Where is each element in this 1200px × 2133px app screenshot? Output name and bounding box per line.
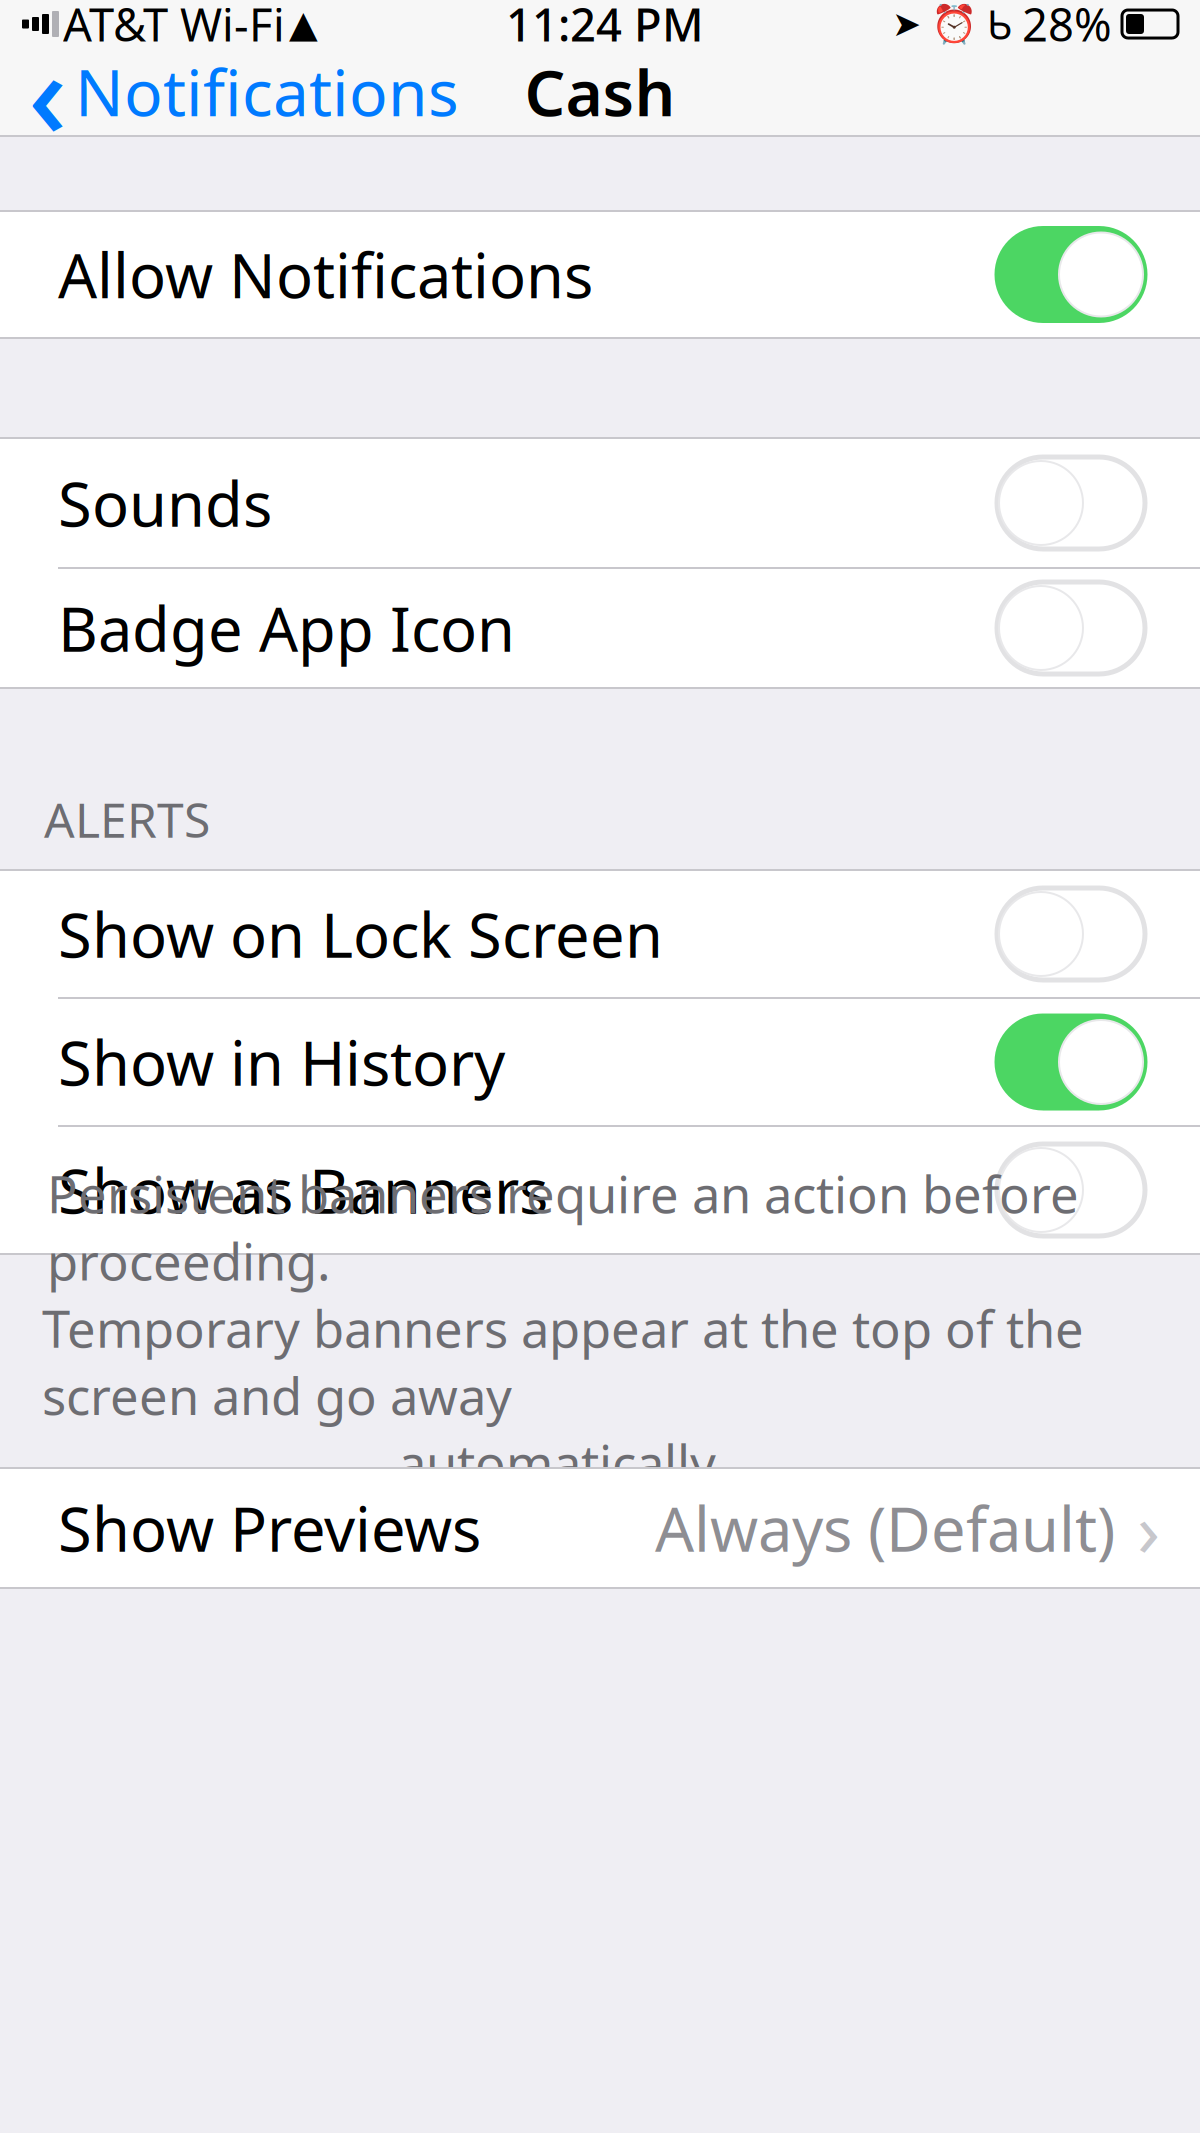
staticText: Persistent banners require an action bef… — [47, 1160, 1079, 1294]
staticText: AT&T Wi-Fi — [63, 0, 285, 54]
staticText: 11:24 PM — [506, 0, 704, 54]
staticText: Show as Banners — [58, 1149, 548, 1231]
button[interactable]: Sounds — [0, 439, 1200, 567]
staticText: Cash — [524, 49, 675, 134]
staticText: Show in History — [58, 1021, 505, 1103]
staticText: ‹ — [28, 12, 67, 171]
staticText: Show on Lock Screen — [58, 893, 663, 975]
button[interactable]: Show Previews — [0, 1469, 1200, 1587]
staticText: ALERTS — [44, 787, 210, 851]
staticText: ➤ — [892, 4, 921, 44]
staticText: ▲ — [289, 3, 318, 45]
staticText: Sounds — [58, 462, 272, 544]
button[interactable]: ‹ — [0, 47, 479, 135]
staticText: ⏰ — [931, 3, 977, 45]
staticText: 28% — [1022, 0, 1112, 54]
staticText: Show Previews — [58, 1487, 481, 1569]
staticText: Notifications — [75, 49, 459, 134]
staticText: Always (Default) — [655, 1487, 1115, 1569]
staticText: Badge App Icon — [58, 587, 515, 669]
button[interactable]: Show as Banners — [0, 1127, 1200, 1253]
staticText: OPTIONS — [44, 1504, 252, 1568]
staticText: Temporary banners appear at the top of t… — [42, 1294, 1084, 1429]
button[interactable]: Show on Lock Screen — [0, 871, 1200, 997]
button[interactable]: Badge App Icon — [0, 569, 1200, 687]
button[interactable]: Allow Notifications — [0, 212, 1200, 337]
staticText: Allow Notifications — [58, 234, 593, 315]
staticText: automatically. — [398, 1429, 728, 1496]
button[interactable]: Show in History — [0, 999, 1200, 1125]
staticText: › — [1137, 1478, 1160, 1578]
staticText: Ƅ — [987, 0, 1012, 50]
